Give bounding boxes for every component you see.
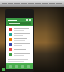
button[interactable]: [8, 22, 31, 25]
button[interactable]: [8, 42, 31, 46]
button[interactable]: [8, 37, 31, 41]
button[interactable]: [8, 27, 31, 31]
button[interactable]: [8, 59, 31, 62]
button[interactable]: [8, 52, 31, 56]
button[interactable]: [8, 32, 31, 36]
button[interactable]: [8, 47, 31, 51]
button[interactable]: Search: [8, 19, 31, 21]
